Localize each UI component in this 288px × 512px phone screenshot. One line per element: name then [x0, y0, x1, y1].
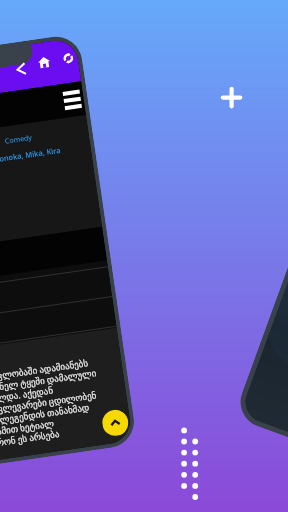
- staticText: საუკუნეების განმავლობაში ადამიანებს: [0, 356, 89, 392]
- button[interactable]: Menu: [62, 89, 81, 107]
- staticText: არსებები გავრცელდა. აქედან: [0, 383, 54, 414]
- staticText: Nonoka, Mika, Kira: [0, 145, 61, 164]
- button[interactable]: Scroll to top: [101, 408, 130, 437]
- button[interactable]: Back: [13, 61, 30, 78]
- staticText: სჯეროდათ, რომ ბნელ ტყეში დამალული: [0, 366, 98, 403]
- staticText: პასუხის გაცემას. ლეგენდის თანახმად: [0, 400, 90, 436]
- staticText: ან და გაანადგურონ ეს არსება: [0, 427, 60, 457]
- staticText: ნადირებულს ლამით ხეტიალ: [0, 417, 55, 447]
- button[interactable]: Home: [37, 55, 51, 69]
- staticText: Comedy: [4, 133, 33, 147]
- button[interactable]: Refresh: [61, 51, 76, 66]
- staticText: მოყოლებული მკვლევარები ცდილობენ: [0, 388, 97, 425]
